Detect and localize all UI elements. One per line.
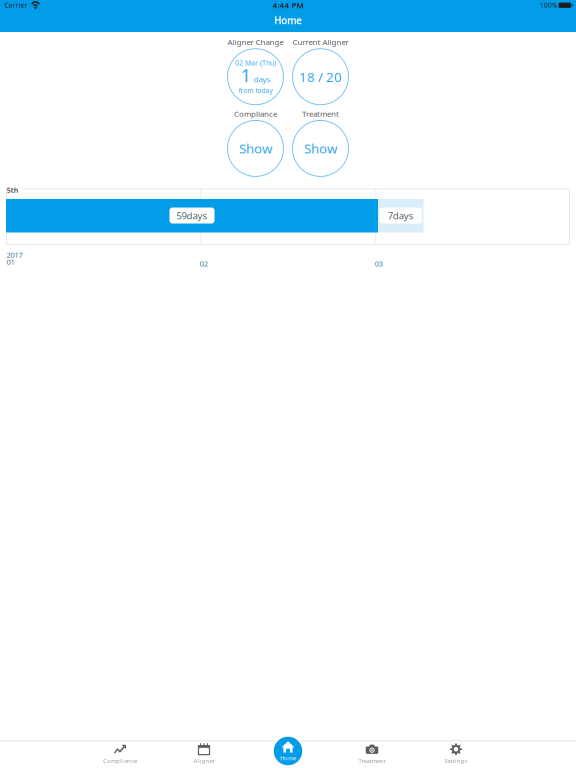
staticText: 18 / 20 — [299, 68, 342, 86]
staticText: 2017 — [6, 250, 22, 260]
button[interactable]: Treatment — [330, 737, 414, 768]
staticText: 4:44 PM — [272, 0, 303, 11]
staticText: Home — [280, 754, 296, 762]
button[interactable]: Aligner — [162, 737, 246, 768]
button[interactable]: Compliance — [78, 737, 162, 768]
button[interactable]: Settings — [414, 737, 498, 768]
staticText: 02 — [200, 258, 208, 269]
button[interactable]: Aligner Change — [227, 36, 283, 105]
staticText: Compliance — [234, 108, 277, 119]
button[interactable]: Current Aligner — [292, 36, 348, 105]
staticText: Carrier — [4, 1, 27, 10]
button[interactable]: Home — [246, 737, 330, 768]
staticText: Treatment — [358, 757, 385, 765]
staticText: Settings — [444, 757, 467, 765]
staticText: Show — [239, 139, 272, 158]
staticText: Current Aligner — [292, 36, 348, 47]
staticText: from today — [238, 86, 272, 95]
staticText: Compliance — [103, 757, 137, 765]
staticText: 02 Mar (Thu) — [235, 58, 276, 68]
staticText: Aligner — [193, 757, 214, 765]
staticText: 01 — [6, 257, 14, 267]
staticText: Home — [274, 14, 302, 27]
staticText: 100% — [540, 1, 557, 10]
staticText: Show — [304, 139, 337, 158]
staticText: days — [254, 74, 271, 84]
button[interactable]: Treatment — [292, 108, 348, 176]
staticText: Aligner Change — [227, 36, 283, 47]
staticText: 59days — [176, 209, 207, 222]
staticText: 5th — [7, 185, 19, 195]
staticText: 03 — [375, 258, 383, 269]
staticText: 1 — [240, 62, 251, 88]
button[interactable]: Compliance — [227, 108, 283, 176]
staticText: Treatment — [302, 108, 339, 119]
staticText: 7days — [388, 209, 414, 222]
